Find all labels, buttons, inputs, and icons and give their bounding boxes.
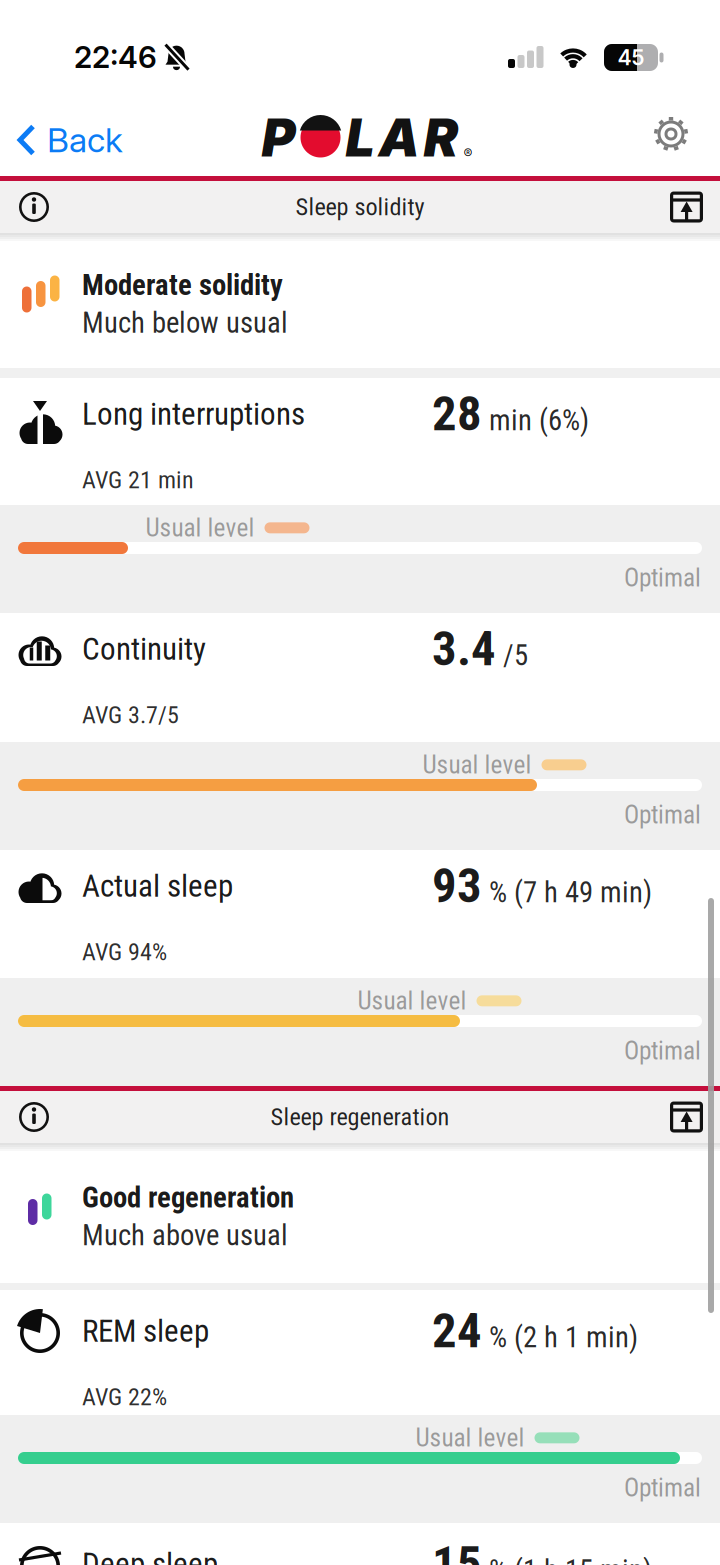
staticText: Optimal xyxy=(624,1473,701,1503)
staticText: Usual level xyxy=(415,1423,524,1453)
staticText: 3.4 xyxy=(432,620,496,677)
staticText: 24 xyxy=(432,1302,482,1359)
button[interactable]: Info xyxy=(0,1102,49,1132)
staticText: ® xyxy=(463,145,472,161)
staticText: % (7 h 49 min) xyxy=(482,876,652,909)
button[interactable]: Open panel xyxy=(670,1101,720,1132)
staticText: 22:46 xyxy=(74,39,157,75)
staticText: Moderate solidity xyxy=(82,268,283,302)
staticText: 15 xyxy=(432,1535,482,1565)
staticText: AVG 21 min xyxy=(82,466,194,494)
staticText: Actual sleep xyxy=(82,868,233,904)
staticText: Much above usual xyxy=(82,1219,288,1252)
button[interactable]: Settings xyxy=(649,118,720,162)
staticText: % (2 h 1 min) xyxy=(482,1321,638,1354)
staticText: R xyxy=(423,106,458,169)
button[interactable]: Open panel xyxy=(670,191,720,222)
staticText: REM sleep xyxy=(82,1313,209,1349)
staticText: Optimal xyxy=(624,563,701,593)
staticText: Usual level xyxy=(145,513,254,543)
staticText: Long interruptions xyxy=(82,396,305,432)
staticText: Optimal xyxy=(624,1036,701,1066)
staticText: AVG 22% xyxy=(82,1383,167,1411)
staticText: min (6%) xyxy=(482,404,589,437)
staticText: Much below usual xyxy=(82,306,288,340)
staticText: Usual level xyxy=(422,750,531,780)
staticText: AVG 3.7/5 xyxy=(82,701,179,729)
button[interactable]: Back xyxy=(0,119,123,160)
staticText: Sleep solidity xyxy=(295,193,424,221)
staticText: Back xyxy=(47,119,123,160)
staticText: AVG 94% xyxy=(82,938,167,966)
staticText: P xyxy=(261,106,295,169)
staticText: 45 xyxy=(617,45,644,70)
staticText: Optimal xyxy=(624,800,701,830)
staticText: Deep sleep xyxy=(82,1546,218,1565)
staticText: % (1 h 15 min) xyxy=(482,1554,652,1565)
staticText: A xyxy=(378,106,419,169)
staticText: Usual level xyxy=(357,986,466,1016)
staticText: Good regeneration xyxy=(82,1181,294,1215)
staticText: /5 xyxy=(496,639,528,672)
staticText: 93 xyxy=(432,857,482,914)
staticText: 28 xyxy=(432,385,482,442)
button[interactable]: Info xyxy=(0,192,49,222)
staticText: L xyxy=(345,106,374,169)
staticText: Continuity xyxy=(82,631,206,667)
staticText: Sleep regeneration xyxy=(270,1103,449,1131)
